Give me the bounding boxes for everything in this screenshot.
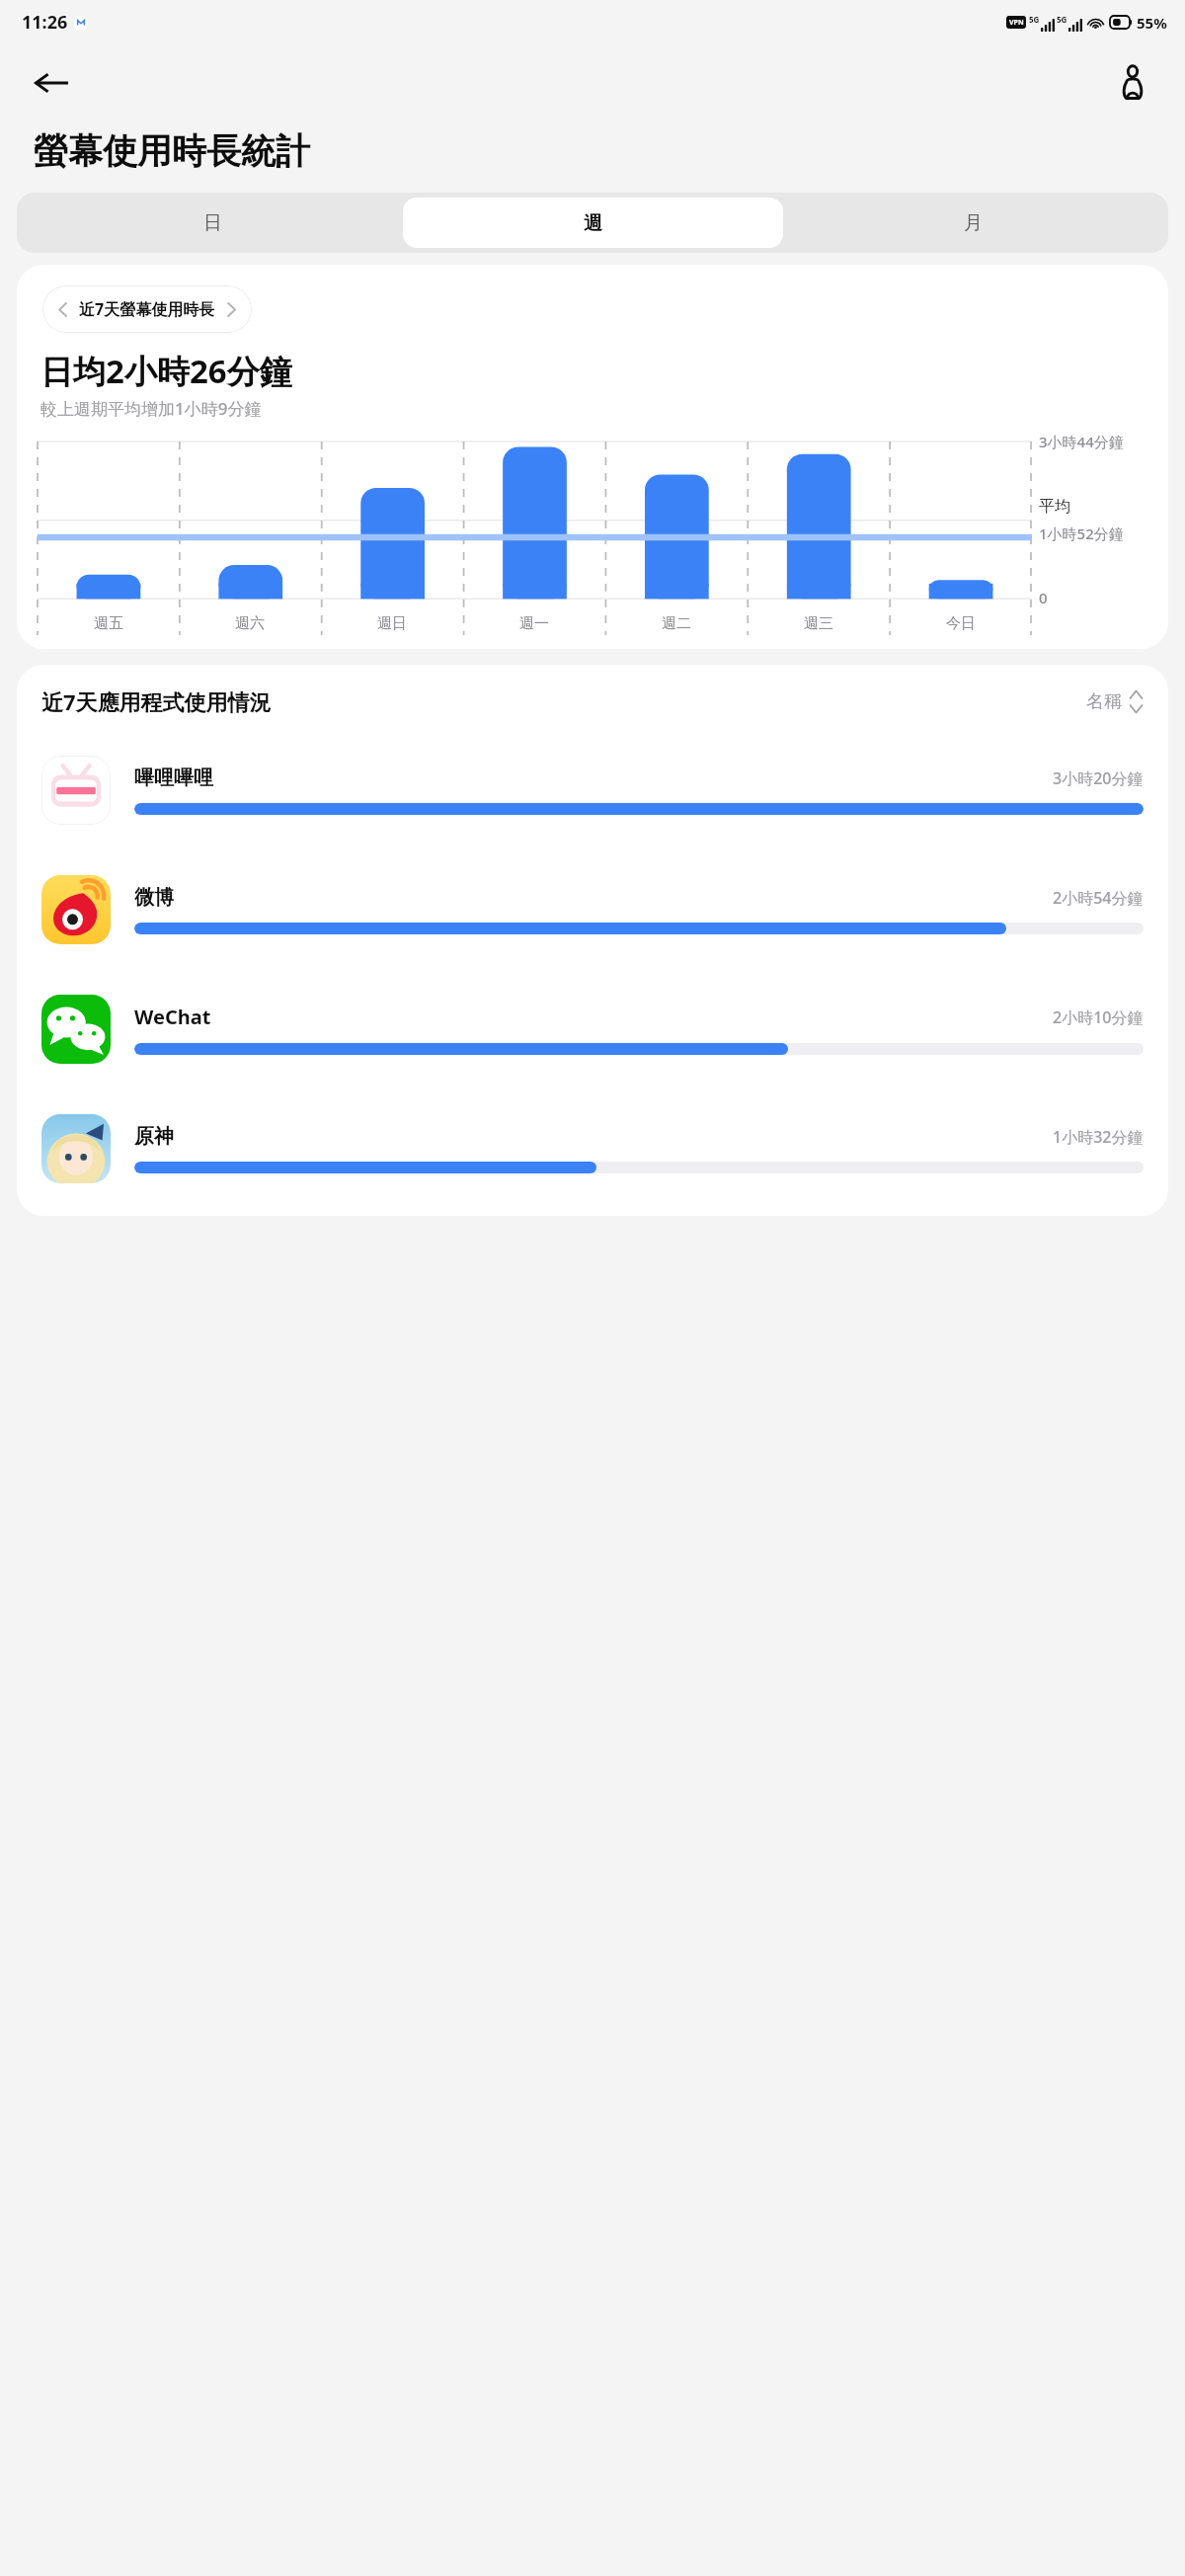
staticText: 週二 [662, 614, 691, 633]
staticText: 週 [584, 211, 602, 235]
button[interactable]: 日 [22, 198, 403, 248]
staticText: 2小時10分鐘 [1053, 1006, 1144, 1028]
staticText: 原神 [134, 1124, 174, 1149]
button[interactable]: 月 [783, 198, 1163, 248]
staticText: 螢幕使用時長統計 [34, 129, 310, 173]
button[interactable]: 週 [403, 198, 783, 248]
staticText: 名稱 [1086, 690, 1122, 713]
staticText: VPN [1009, 18, 1024, 28]
button[interactable]: WeChat [41, 969, 1144, 1088]
staticText: 3小時44分鐘 [1039, 432, 1124, 451]
staticText: 3小時20分鐘 [1053, 767, 1144, 789]
staticText: 週五 [94, 614, 123, 633]
staticText: 1小時32分鐘 [1053, 1126, 1144, 1148]
button[interactable]: 近7天螢幕使用時長 [42, 285, 252, 333]
staticText: 微博 [134, 885, 174, 910]
staticText: WeChat [134, 1004, 211, 1030]
button[interactable]: 嗶哩嗶哩 [41, 730, 1144, 849]
button[interactable]: Back [26, 57, 77, 109]
staticText: 今日 [946, 614, 976, 633]
staticText: 5G [1057, 14, 1067, 25]
button[interactable]: 原神 [41, 1088, 1144, 1208]
staticText: 週一 [519, 614, 549, 633]
staticText: 週日 [377, 614, 407, 633]
staticText: 週六 [235, 614, 265, 633]
staticText: 較上週期平均增加1小時9分鐘 [40, 397, 262, 420]
staticText: 2小時54分鐘 [1053, 887, 1144, 909]
staticText: 日均2小時26分鐘 [40, 349, 292, 393]
staticText: 月 [964, 211, 983, 235]
staticText: 1小時52分鐘 [1039, 523, 1124, 543]
staticText: 0 [1039, 588, 1048, 607]
staticText: 嗶哩嗶哩 [134, 765, 213, 790]
staticText: 近7天應用程式使用情況 [41, 686, 272, 716]
button[interactable]: 名稱 [1086, 689, 1144, 714]
button[interactable]: Focus mode [1106, 56, 1159, 110]
staticText: 平均 [1039, 497, 1070, 517]
staticText: 日 [203, 211, 222, 235]
staticText: 5G [1029, 14, 1040, 25]
staticText: 55% [1137, 13, 1167, 33]
staticText: 週三 [804, 614, 833, 633]
button[interactable]: 微博 [41, 849, 1144, 969]
staticText: 11:26 [22, 10, 68, 35]
staticText: 近7天螢幕使用時長 [79, 298, 215, 320]
